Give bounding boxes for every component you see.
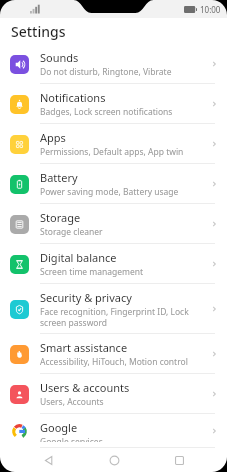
button[interactable]: Battery xyxy=(0,164,227,204)
staticText: Notifications xyxy=(40,90,106,105)
staticText: Settings xyxy=(11,22,66,41)
staticText: 10:00 xyxy=(200,4,221,15)
staticText: Do not disturb, Ringtone, Vibrate xyxy=(40,66,172,78)
staticText: Accessibility, HiTouch, Motion control xyxy=(40,356,188,368)
button[interactable]: Sounds xyxy=(0,44,227,84)
staticText: Permissions, Default apps, App twin xyxy=(40,146,184,158)
staticText: Storage cleaner xyxy=(40,226,103,238)
staticText: Apps xyxy=(40,130,66,145)
button[interactable]: Smart assistance xyxy=(0,334,227,374)
staticText: Sounds xyxy=(40,50,79,65)
button[interactable]: Storage xyxy=(0,204,227,244)
button[interactable]: Recent apps xyxy=(162,448,196,472)
button[interactable]: Home xyxy=(97,448,131,472)
staticText: Security & privacy xyxy=(40,290,132,305)
button[interactable]: Users & accounts xyxy=(0,374,227,414)
button[interactable]: Back xyxy=(31,448,65,472)
staticText: Face recognition, Fingerprint ID, Lock s… xyxy=(40,306,205,328)
staticText: Users, Accounts xyxy=(40,396,104,408)
staticText: Users & accounts xyxy=(40,380,130,395)
button[interactable]: Google xyxy=(0,414,227,448)
staticText: Google xyxy=(40,420,78,435)
staticText: Storage xyxy=(40,210,81,225)
staticText: Screen time management xyxy=(40,266,144,278)
staticText: Smart assistance xyxy=(40,340,128,355)
button[interactable]: Apps xyxy=(0,124,227,164)
staticText: Badges, Lock screen notifications xyxy=(40,106,173,118)
button[interactable]: Notifications xyxy=(0,84,227,124)
staticText: Digital balance xyxy=(40,250,117,265)
staticText: Power saving mode, Battery usage xyxy=(40,186,179,198)
button[interactable]: Security & privacy xyxy=(0,284,227,334)
staticText: Battery xyxy=(40,170,78,185)
button[interactable]: Digital balance xyxy=(0,244,227,284)
staticText: Google services xyxy=(40,436,103,442)
